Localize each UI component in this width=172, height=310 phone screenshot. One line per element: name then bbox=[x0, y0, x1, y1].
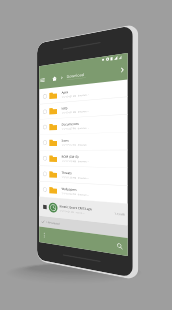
staticText: 1 file selected bbox=[46, 220, 60, 225]
staticText: loXp bbox=[62, 106, 67, 110]
button[interactable]: Apex bbox=[39, 79, 128, 104]
staticText: 1/1/15 2:44 PM drwxrwx--- bbox=[62, 192, 89, 197]
staticText: 1/1/15 1:08 AM drwxrwx--- bbox=[62, 176, 89, 180]
staticText: ROM (CM13) bbox=[62, 155, 79, 159]
staticText: 1/1/15 4:21 AM drwxrwx--- bbox=[62, 93, 89, 99]
button[interactable]: More options bbox=[41, 231, 47, 239]
button[interactable]: Open navigation menu bbox=[40, 77, 45, 83]
button[interactable]: Kinetic Gears CM13.apk bbox=[39, 197, 128, 226]
staticText: 1/1/15 4:01 AM drwxrwx--- bbox=[62, 110, 89, 114]
staticText: Documentos bbox=[62, 122, 79, 127]
button[interactable]: Threats bbox=[39, 166, 128, 186]
button[interactable]: Forward bbox=[118, 66, 126, 74]
button[interactable]: loXp bbox=[39, 97, 128, 120]
button[interactable]: Documentos bbox=[39, 114, 128, 135]
staticText: Download bbox=[67, 72, 84, 79]
staticText: 7.13 MB bbox=[115, 212, 125, 216]
staticText: 1/1/15 4:21 AM -rw-rw---- bbox=[60, 209, 85, 215]
staticText: Kinetic Gears CM13.apk bbox=[60, 204, 92, 211]
button[interactable]: ROM (CM13) bbox=[39, 150, 128, 168]
button[interactable]: Icons bbox=[39, 132, 128, 150]
staticText: 1/1/15 4:07 PM drwxrwx--- bbox=[62, 126, 89, 130]
staticText: Wallpapers bbox=[62, 187, 77, 192]
staticText: Icons bbox=[62, 138, 69, 143]
staticText: 1/1/15 3:18 AM drwxrwx--- bbox=[62, 160, 89, 163]
button[interactable]: Search bbox=[115, 241, 124, 252]
staticText: Threats bbox=[62, 171, 72, 175]
staticText: Apex bbox=[62, 90, 68, 95]
button[interactable]: Wallpapers bbox=[39, 181, 128, 204]
staticText: 1/1/15 5:12 PM drwxrwx--- bbox=[62, 143, 89, 147]
